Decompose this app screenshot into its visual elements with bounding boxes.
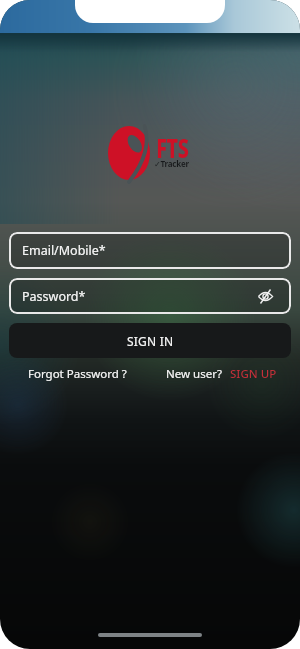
- staticText: ✓Tracker: [154, 158, 189, 169]
- button[interactable]: Forgot Password ?: [28, 366, 127, 382]
- staticText: FTS: [156, 130, 189, 165]
- button[interactable]: Email/Mobile*: [9, 232, 291, 269]
- button[interactable]: SIGN UP: [230, 366, 277, 382]
- staticText: SIGN IN: [127, 333, 174, 349]
- staticText: Password*: [22, 288, 86, 305]
- staticText: SIGN UP: [230, 366, 277, 382]
- staticText: New user?: [166, 366, 222, 382]
- button[interactable]: SIGN IN: [9, 323, 291, 358]
- staticText: Email/Mobile*: [22, 242, 106, 259]
- staticText: Forgot Password ?: [28, 366, 127, 382]
- button[interactable]: Password*: [9, 278, 291, 314]
